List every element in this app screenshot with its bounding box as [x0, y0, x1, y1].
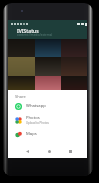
button[interactable]: Maps [8, 127, 87, 141]
button[interactable]: Photo [61, 57, 87, 76]
staticText: Share [15, 94, 26, 99]
button[interactable]: Photo [8, 39, 35, 57]
staticText: Maps [26, 131, 37, 137]
button[interactable]: Photo [35, 57, 61, 76]
staticText: Photos [26, 115, 40, 121]
button[interactable]: Recent apps [65, 146, 75, 156]
button[interactable]: Whatsapp [8, 99, 87, 113]
button[interactable]: Photo [8, 57, 35, 76]
button[interactable]: Back [22, 146, 32, 156]
button[interactable]: Photo [61, 76, 87, 90]
staticText: IVIStatus [17, 28, 39, 35]
staticText: Upload to Photos [26, 121, 49, 125]
button[interactable]: Photo [61, 39, 87, 57]
button[interactable]: Photo [35, 76, 61, 90]
button[interactable]: Home [44, 146, 54, 156]
staticText: content://media/external [17, 33, 53, 37]
button[interactable]: Photo [8, 76, 35, 90]
staticText: Whatsapp [26, 103, 46, 109]
button[interactable]: Photo [35, 39, 61, 57]
button[interactable]: Photos [8, 113, 87, 127]
